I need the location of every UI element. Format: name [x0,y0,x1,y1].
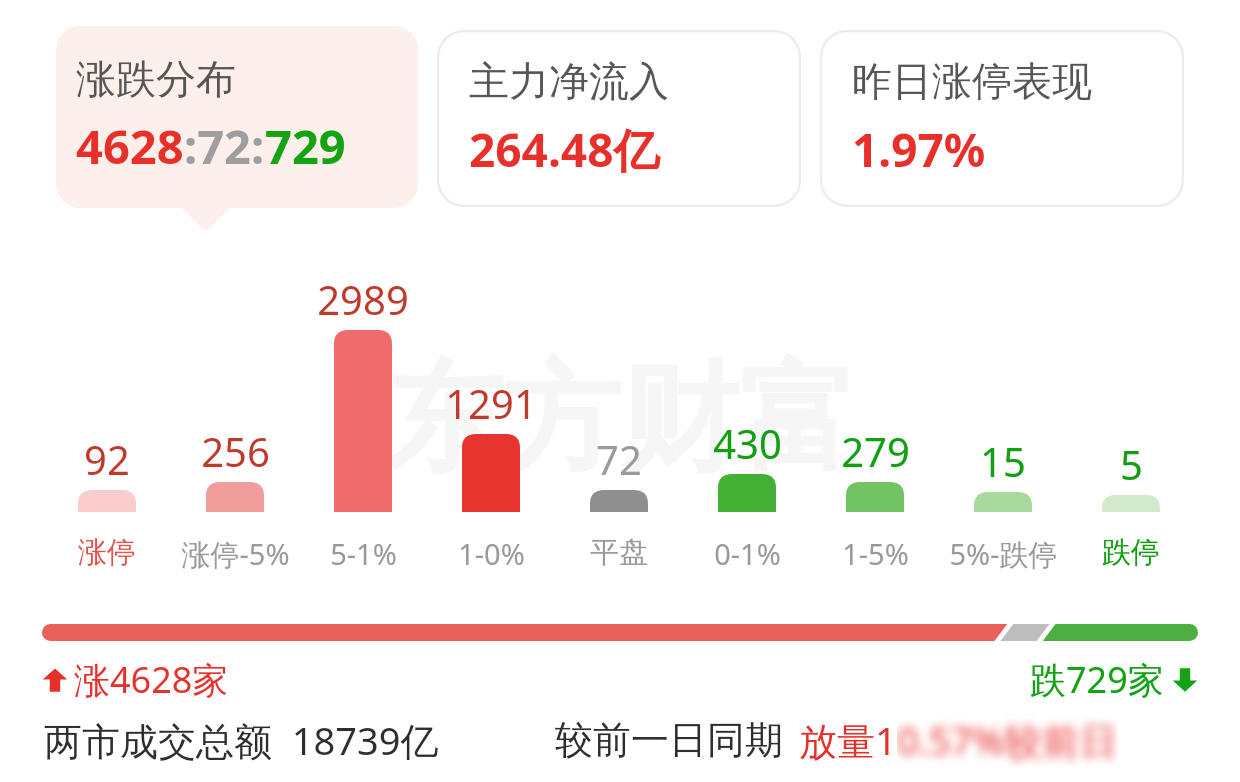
button[interactable]: 涨跌分布 [56,26,418,208]
staticText: 5%-跌停 [949,534,1058,574]
staticText: 较前一日同期 [555,716,783,764]
staticText: 跌729家 [1030,655,1164,704]
staticText: 5 [1120,437,1143,491]
staticText: 涨4628家 [74,655,229,704]
staticText: 279 [841,424,910,478]
button[interactable]: Advancing [42,655,229,704]
staticText: 跌停 [1102,534,1160,571]
staticText: :72: [184,114,265,178]
staticText: 256 [201,424,270,478]
staticText: 涨跌分布 [76,54,236,104]
staticText: 1-0% [458,534,525,573]
staticText: 1.97% [852,118,986,181]
other: Declining [1172,667,1198,693]
staticText: 0-1% [714,534,781,573]
staticText: 264.48亿 [469,118,660,181]
staticText: 1291 [445,376,537,430]
button[interactable]: 主力净流入 [437,30,801,207]
staticText: 2989 [317,272,409,326]
staticText: 729 [265,114,346,178]
staticText: 昨日涨停表现 [852,56,1092,106]
staticText: 5-1% [330,534,397,573]
button[interactable] [42,624,1198,641]
staticText: 430 [713,416,782,470]
staticText: 东方财富 [385,345,857,494]
staticText: 主力净流入 [469,56,669,106]
staticText: 72 [596,432,642,486]
staticText: 4628 [76,114,184,178]
staticText: 15 [980,434,1026,488]
other: Advancing [42,667,68,693]
staticText: 0.57%较前日 [897,714,1118,766]
staticText: 1-5% [842,534,909,573]
staticText: 涨停-5% [181,534,290,574]
staticText: 放量1 [799,714,897,766]
staticText: 平盘 [590,534,648,571]
staticText: 92 [84,432,130,486]
button[interactable]: 昨日涨停表现 [820,30,1184,207]
staticText: 两市成交总额 18739亿 [44,714,439,766]
staticText: 涨停 [78,534,136,571]
button[interactable]: 跌729家 [1030,655,1198,704]
